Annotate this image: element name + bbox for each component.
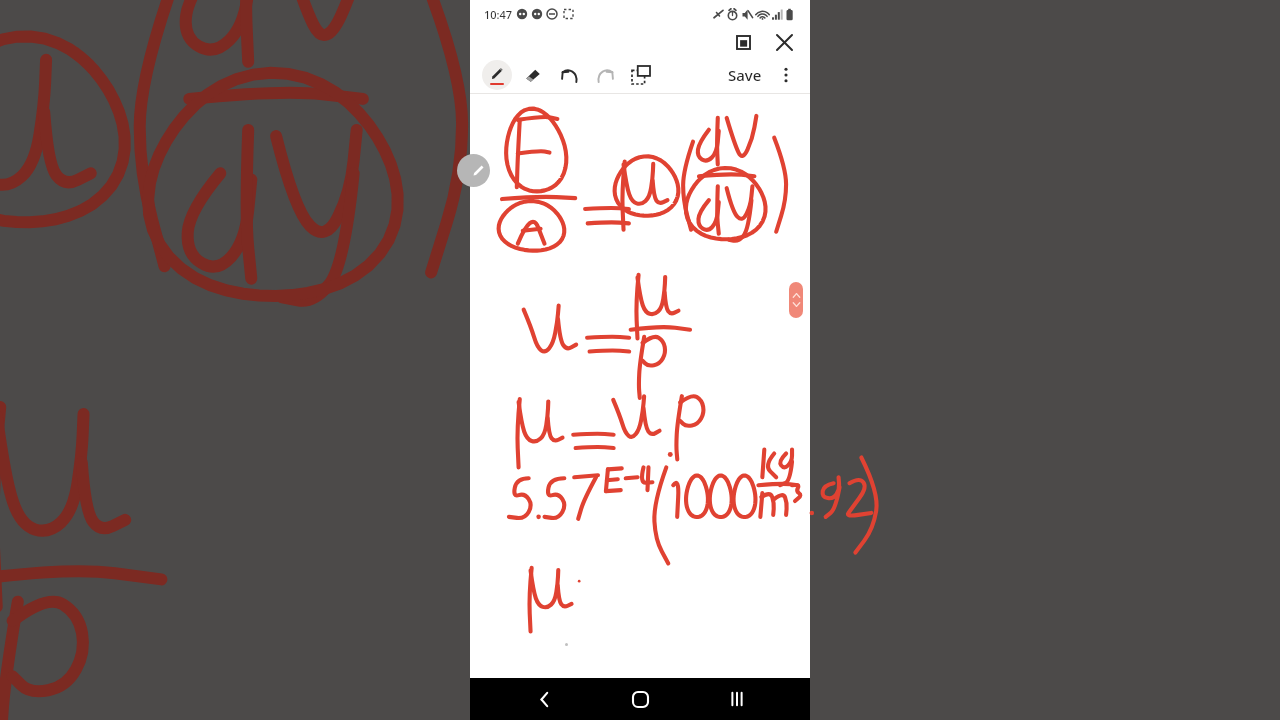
- staticText: Save: [728, 65, 762, 85]
- button[interactable]: More options: [772, 61, 800, 89]
- button[interactable]: Undo: [554, 60, 584, 90]
- button[interactable]: Home: [617, 678, 663, 720]
- button[interactable]: Eraser: [518, 60, 548, 90]
- button[interactable]: Pen: [482, 60, 512, 90]
- button[interactable]: Pen settings: [457, 154, 490, 187]
- staticText: 10:47: [484, 7, 513, 22]
- button[interactable]: Select: [626, 60, 656, 90]
- button[interactable]: Recent apps: [714, 678, 760, 720]
- button[interactable]: Back: [521, 678, 567, 720]
- button[interactable]: Pop-up view: [730, 29, 756, 55]
- button[interactable]: Scroll page: [789, 282, 803, 318]
- button[interactable]: Redo: [590, 60, 620, 90]
- button[interactable]: Save: [722, 58, 768, 92]
- button[interactable]: Close: [771, 29, 797, 55]
